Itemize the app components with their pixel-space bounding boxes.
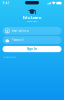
staticText: 9:41	[3, 1, 10, 5]
staticText: Password	[11, 38, 23, 42]
button[interactable]: Password	[2, 36, 61, 44]
staticText: EduLearn	[22, 15, 41, 20]
staticText: Sign in to continue	[26, 21, 37, 22]
staticText: Email address	[11, 29, 28, 33]
staticText: Sign In	[27, 47, 37, 51]
button[interactable]: Forgot password?	[2, 56, 16, 58]
staticText: Forgot password?	[2, 56, 16, 58]
button[interactable]: Sign In	[2, 46, 61, 52]
button[interactable]: Email address	[2, 27, 61, 35]
